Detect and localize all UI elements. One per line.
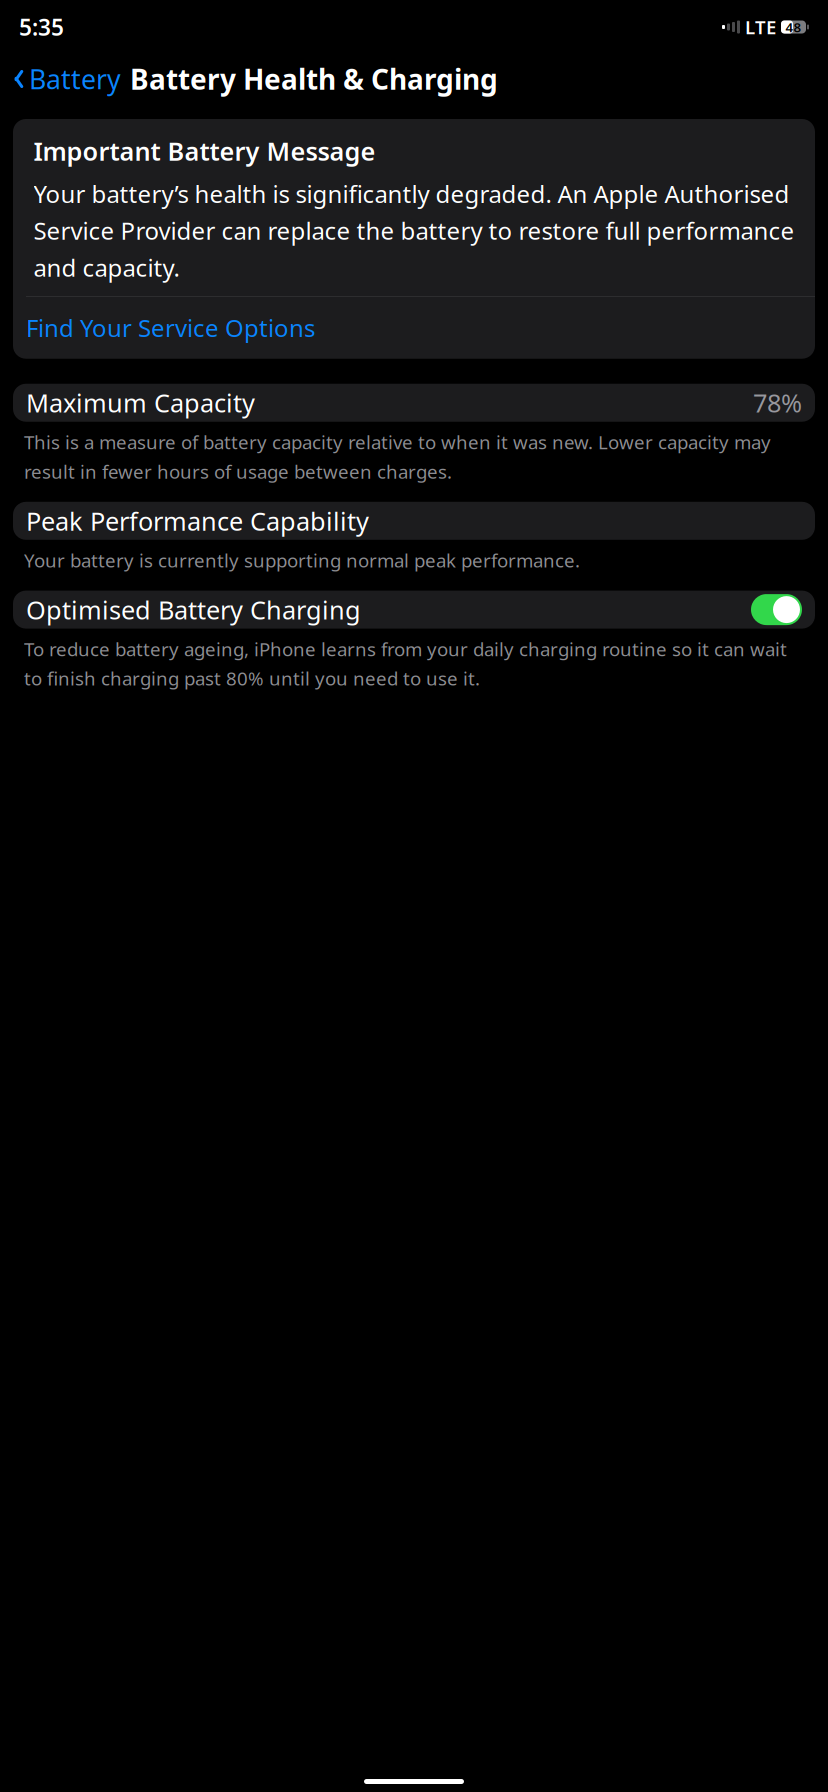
staticText: Optimised Battery Charging	[26, 593, 361, 626]
staticText: Battery	[29, 61, 121, 97]
staticText: To reduce battery ageing, iPhone learns …	[24, 637, 787, 691]
staticText: 48	[785, 18, 801, 36]
button[interactable]: Battery	[10, 55, 121, 103]
staticText: This is a measure of battery capacity re…	[24, 430, 771, 484]
staticText: Important Battery Message	[33, 134, 375, 168]
button[interactable]: Maximum Capacity	[13, 384, 815, 422]
staticText: Find Your Service Options	[26, 312, 315, 344]
button[interactable]: Peak Performance Capability	[13, 502, 815, 540]
button[interactable]: Optimised Battery Charging	[13, 591, 815, 629]
staticText: Battery Health & Charging	[130, 60, 498, 98]
staticText: Your battery is currently supporting nor…	[24, 548, 580, 573]
staticText: Peak Performance Capability	[26, 504, 369, 538]
staticText: 78%	[753, 386, 802, 419]
staticText: 5:35	[19, 12, 64, 42]
staticText: LTE	[745, 15, 776, 39]
staticText: Maximum Capacity	[26, 386, 255, 419]
button[interactable]: Find Your Service Options	[13, 297, 815, 359]
staticText: Your battery’s health is significantly d…	[33, 178, 794, 283]
